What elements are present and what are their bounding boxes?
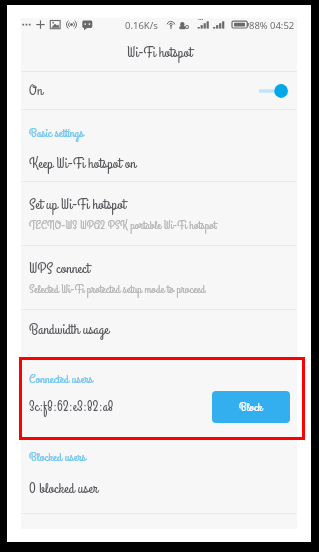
staticText: TECNO-W3 WPA2 PSK portable Wi-Fi hotspot xyxy=(29,217,217,234)
staticText: Blocked users xyxy=(29,449,86,467)
staticText: Set up Wi-Fi hotspot xyxy=(29,194,126,215)
staticText: Bandwidth usage xyxy=(29,319,109,340)
staticText: Wi-Fi hotspot xyxy=(127,42,192,63)
staticText: Keep Wi-Fi hotspot on xyxy=(29,153,136,174)
button[interactable]: Set up Wi-Fi hotspot xyxy=(21,182,297,245)
button[interactable]: Block xyxy=(212,391,290,423)
staticText: 0 blocked user xyxy=(29,478,98,499)
staticText: Block xyxy=(239,399,263,416)
staticText: 04:52 xyxy=(270,19,295,32)
staticText: 0.16K/s xyxy=(125,19,158,32)
button[interactable]: 0 blocked user xyxy=(21,470,297,506)
button[interactable]: On xyxy=(21,72,297,109)
button[interactable]: Wi-Fi hotspot xyxy=(21,31,297,72)
staticText: 3c:f8:62:e3:82:a8 xyxy=(29,397,114,417)
button[interactable]: Keep Wi-Fi hotspot on xyxy=(21,145,297,181)
button[interactable]: Bandwidth usage xyxy=(21,310,297,348)
staticText: 88% xyxy=(249,19,268,32)
staticText: WPS connect xyxy=(29,258,90,279)
staticText: On xyxy=(29,80,43,101)
staticText: Basic settings xyxy=(29,125,84,143)
staticText: Selected Wi-Fi protected setup mode to p… xyxy=(29,281,206,298)
staticText: Connected users xyxy=(29,371,93,389)
button[interactable]: WPS connect xyxy=(21,246,297,309)
